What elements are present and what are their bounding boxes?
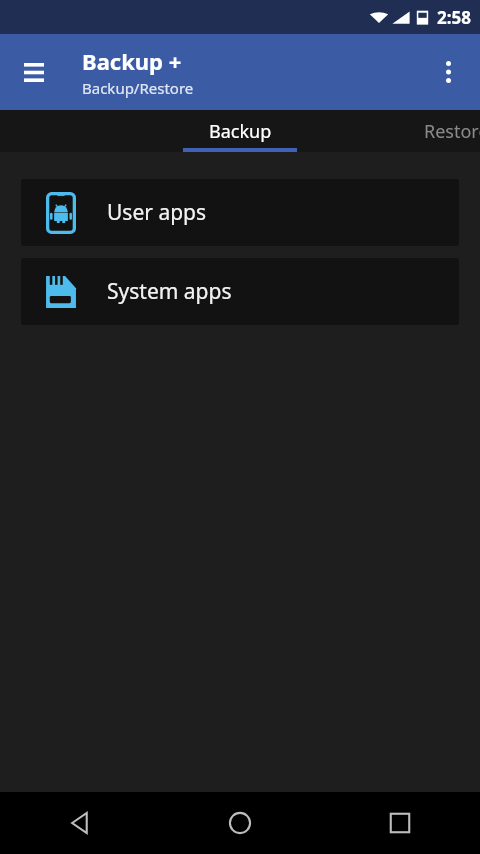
button[interactable]: Restore [348,110,480,152]
button[interactable]: Home [160,792,320,854]
staticText: Backup/Restore [82,78,194,98]
staticText: User apps [107,198,207,227]
button[interactable]: Recent apps [320,792,480,854]
button[interactable]: System apps [21,258,459,325]
button[interactable]: More options [424,48,472,96]
staticText: 2:58 [437,6,471,29]
staticText: Backup [209,119,272,144]
button[interactable]: Backup [132,110,348,152]
staticText: Backup + [82,46,182,76]
button[interactable]: User apps [21,179,459,246]
staticText: System apps [107,277,232,306]
button[interactable]: Open navigation drawer [10,48,58,96]
button[interactable]: Back [0,792,160,854]
staticText: Restore [424,119,480,144]
